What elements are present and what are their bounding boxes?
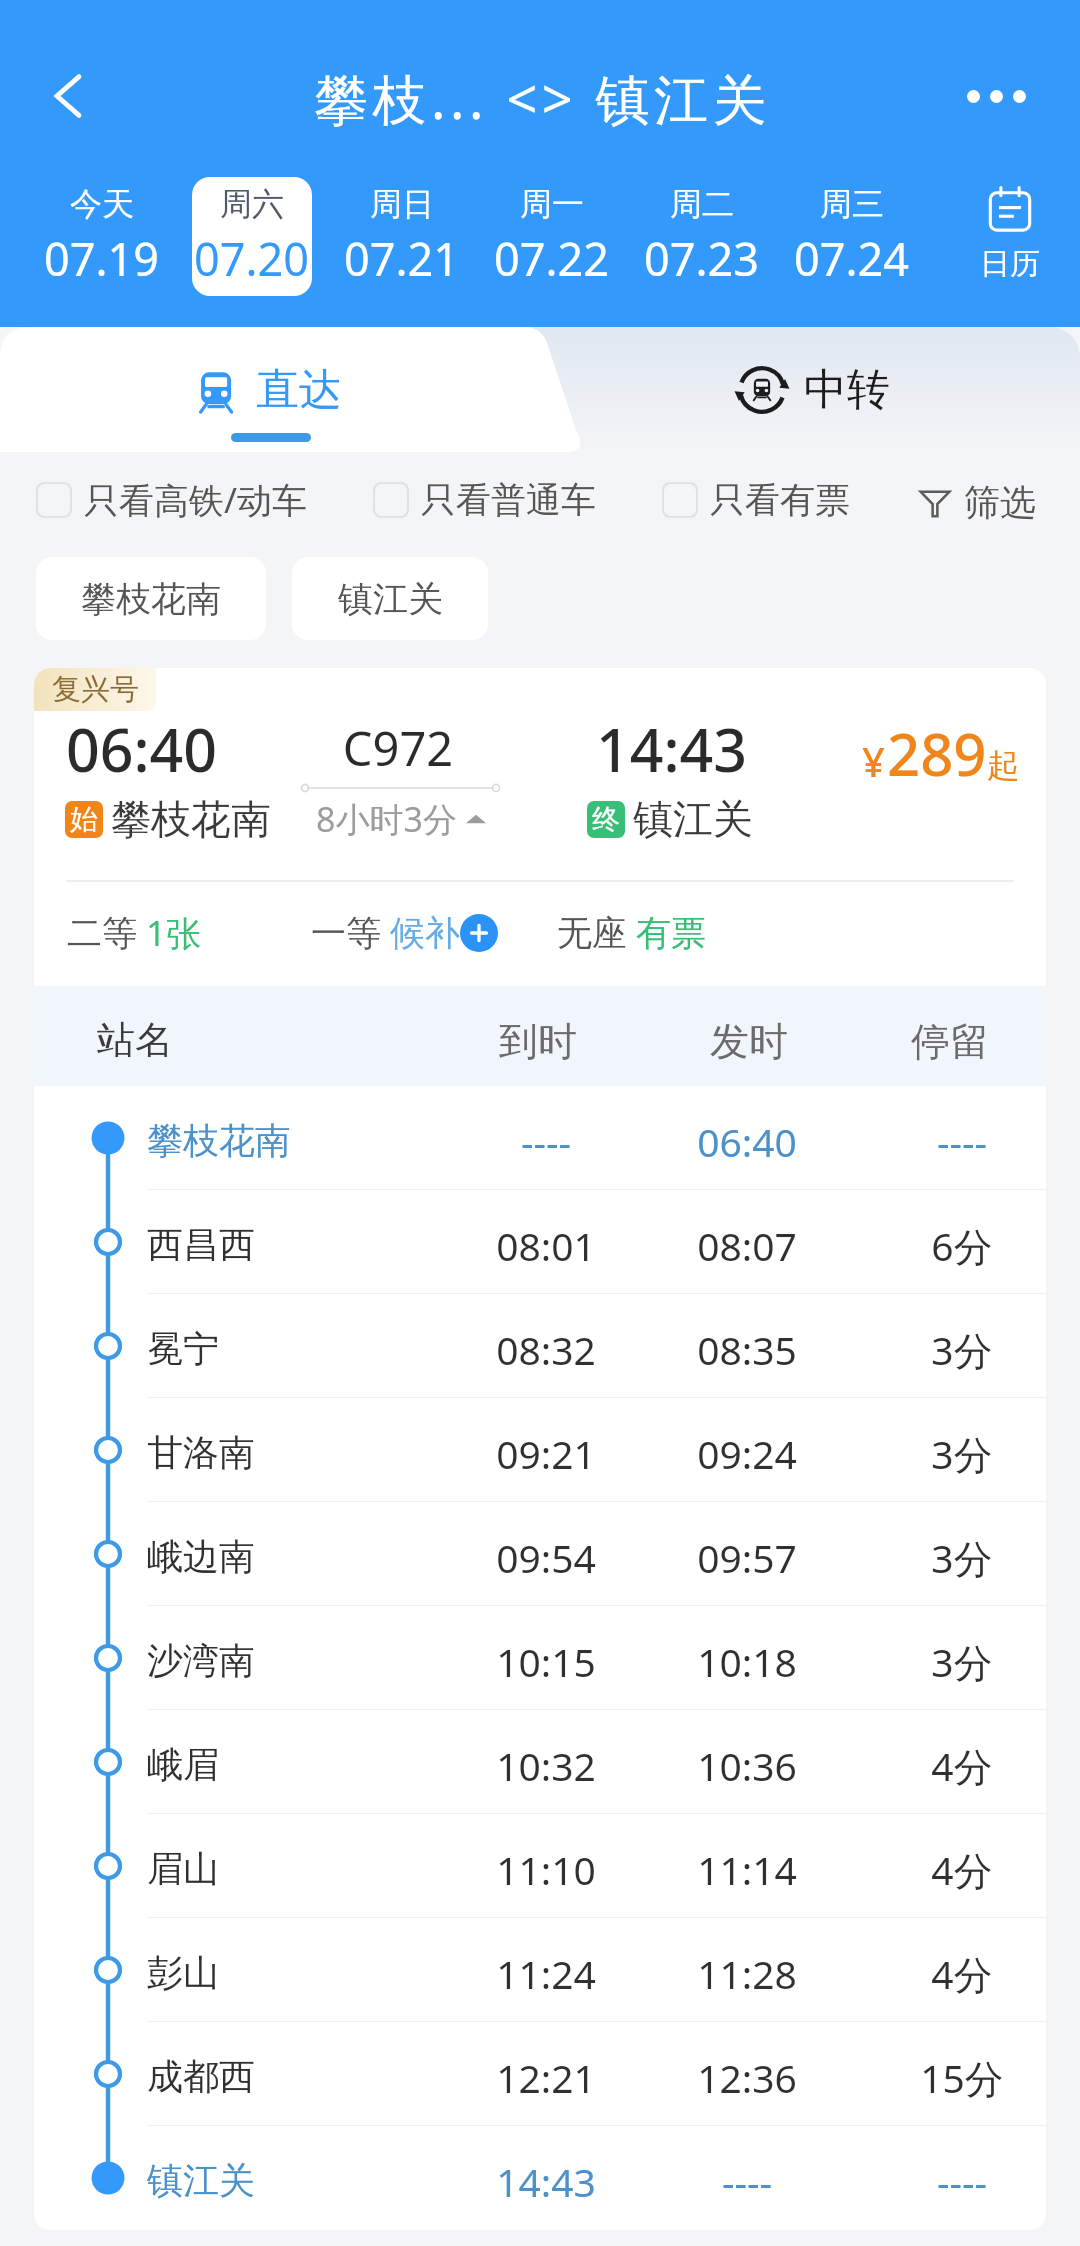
- button[interactable]: 复兴号: [34, 668, 1046, 2230]
- staticText: 攀枝... <> 镇江关: [314, 61, 772, 135]
- staticText: 4分: [862, 1739, 1046, 1792]
- button[interactable]: 峨边南: [34, 1502, 1046, 1606]
- staticText: 沙湾南: [147, 1638, 255, 1683]
- staticText: 08:07: [647, 1219, 847, 1272]
- button[interactable]: 筛选: [918, 469, 1036, 535]
- staticText: 中转: [804, 363, 890, 417]
- staticText: ----: [647, 2155, 847, 2208]
- button[interactable]: Back: [22, 50, 114, 142]
- button[interactable]: 周三: [777, 177, 927, 296]
- button[interactable]: 周日: [327, 177, 477, 296]
- staticText: C972: [263, 716, 533, 780]
- staticText: 11:14: [647, 1843, 847, 1896]
- button[interactable]: 西昌西: [34, 1190, 1046, 1294]
- staticText: 只看普通车: [421, 478, 596, 522]
- staticText: 07.23: [644, 228, 760, 289]
- staticText: 只看有票: [710, 478, 850, 522]
- staticText: 到时: [438, 1017, 638, 1066]
- button[interactable]: 眉山: [34, 1814, 1046, 1918]
- staticText: 日历: [980, 245, 1040, 283]
- button[interactable]: 只看普通车: [373, 469, 596, 531]
- button[interactable]: 中转: [545, 327, 1080, 452]
- staticText: 12:21: [446, 2051, 646, 2104]
- staticText: 08:35: [647, 1323, 847, 1376]
- staticText: 06:40: [66, 709, 218, 789]
- button[interactable]: More options: [950, 50, 1042, 142]
- button[interactable]: 只看高铁/动车: [36, 469, 308, 531]
- staticText: 6分: [862, 1219, 1046, 1272]
- staticText: 周六: [220, 184, 284, 224]
- staticText: ----: [862, 1115, 1046, 1168]
- staticText: 眉山: [147, 1846, 219, 1891]
- staticText: 11:24: [446, 1947, 646, 2000]
- staticText: 周三: [820, 184, 884, 224]
- button[interactable]: 周一: [477, 177, 627, 296]
- button[interactable]: 峨眉: [34, 1710, 1046, 1814]
- staticText: 10:15: [446, 1635, 646, 1688]
- staticText: 09:54: [446, 1531, 646, 1584]
- button[interactable]: 周二: [627, 177, 777, 296]
- button[interactable]: 直达: [0, 327, 536, 452]
- staticText: 14:43: [446, 2155, 646, 2208]
- button[interactable]: 冕宁: [34, 1294, 1046, 1398]
- staticText: 3分: [862, 1531, 1046, 1584]
- staticText: 3分: [862, 1427, 1046, 1480]
- staticText: 终: [592, 802, 620, 837]
- staticText: 289: [887, 714, 987, 793]
- button[interactable]: 镇江关: [292, 557, 488, 640]
- staticText: 14:43: [596, 709, 748, 789]
- staticText: 彭山: [147, 1950, 219, 1995]
- staticText: 攀枝花南: [147, 1118, 291, 1163]
- staticText: 06:40: [647, 1115, 847, 1168]
- staticText: 成都西: [147, 2054, 255, 2099]
- staticText: 发时: [649, 1017, 849, 1066]
- staticText: 今天: [70, 184, 134, 224]
- staticText: 停留: [850, 1017, 1046, 1066]
- staticText: 一等: [311, 911, 381, 955]
- staticText: 1张: [146, 909, 202, 957]
- button[interactable]: 成都西: [34, 2022, 1046, 2126]
- staticText: 07.21: [344, 228, 460, 289]
- staticText: ----: [446, 1115, 646, 1168]
- staticText: 候补: [390, 911, 460, 955]
- button[interactable]: Calendar: [943, 180, 1077, 288]
- staticText: 10:32: [446, 1739, 646, 1792]
- button[interactable]: 彭山: [34, 1918, 1046, 2022]
- staticText: 4分: [862, 1947, 1046, 2000]
- button[interactable]: 攀枝花南: [36, 557, 266, 640]
- staticText: 09:24: [647, 1427, 847, 1480]
- staticText: 09:21: [446, 1427, 646, 1480]
- staticText: 07.22: [494, 228, 610, 289]
- staticText: 冕宁: [147, 1326, 219, 1371]
- staticText: 07.19: [44, 228, 160, 289]
- staticText: 起: [987, 745, 1020, 787]
- staticText: 3分: [862, 1635, 1046, 1688]
- button[interactable]: 甘洛南: [34, 1398, 1046, 1502]
- staticText: 无座: [557, 911, 627, 955]
- staticText: 周二: [670, 184, 734, 224]
- staticText: 镇江关: [338, 577, 443, 621]
- staticText: 镇江关: [633, 794, 753, 844]
- staticText: 镇江关: [147, 2158, 255, 2203]
- staticText: 西昌西: [147, 1222, 255, 1267]
- button[interactable]: 镇江关: [34, 2126, 1046, 2230]
- button[interactable]: 沙湾南: [34, 1606, 1046, 1710]
- staticText: 15分: [862, 2051, 1046, 2104]
- button[interactable]: 今天: [27, 177, 177, 296]
- staticText: 筛选: [964, 480, 1036, 525]
- staticText: ¥: [862, 734, 885, 788]
- staticText: 07.20: [194, 228, 310, 289]
- button[interactable]: 攀枝花南: [34, 1086, 1046, 1190]
- staticText: 始: [70, 802, 98, 837]
- staticText: 08:01: [446, 1219, 646, 1272]
- staticText: ----: [862, 2155, 1046, 2208]
- staticText: 站名: [97, 1016, 173, 1064]
- staticText: 8小时3分: [316, 796, 457, 842]
- staticText: 周日: [370, 184, 434, 224]
- staticText: 周一: [520, 184, 584, 224]
- staticText: 攀枝花南: [111, 794, 271, 844]
- staticText: 峨边南: [147, 1534, 255, 1579]
- button[interactable]: 周六: [177, 177, 327, 296]
- staticText: 有票: [636, 911, 706, 955]
- button[interactable]: 只看有票: [662, 469, 850, 531]
